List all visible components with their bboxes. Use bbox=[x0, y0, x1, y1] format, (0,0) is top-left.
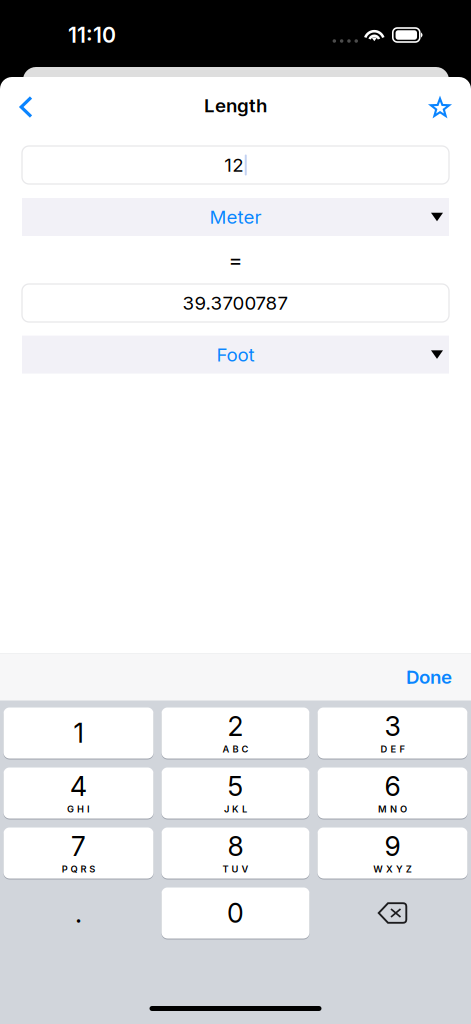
staticText: I bbox=[87, 803, 90, 815]
staticText: 6 bbox=[384, 770, 400, 802]
staticText: 3 bbox=[384, 710, 400, 742]
staticText: L bbox=[242, 803, 247, 815]
button[interactable]: 1 bbox=[3, 707, 153, 758]
staticText: D bbox=[381, 743, 388, 755]
staticText: Z bbox=[406, 863, 412, 875]
button[interactable]: 9 bbox=[317, 827, 467, 878]
staticText: 39.3700787 bbox=[182, 292, 288, 314]
staticText: 7 bbox=[71, 830, 86, 862]
staticText: O bbox=[400, 803, 407, 815]
button[interactable]: 5 bbox=[161, 767, 309, 818]
staticText: E bbox=[390, 743, 396, 755]
staticText: F bbox=[399, 743, 404, 755]
staticText: C bbox=[241, 743, 248, 755]
button[interactable]: . bbox=[3, 887, 153, 938]
staticText: R bbox=[80, 863, 86, 875]
staticText: Done bbox=[406, 666, 452, 688]
staticText: V bbox=[241, 863, 248, 875]
staticText: 1 bbox=[73, 717, 83, 749]
staticText: 8 bbox=[227, 830, 243, 862]
staticText: X bbox=[386, 863, 393, 875]
button[interactable]: Meter bbox=[0, 198, 471, 236]
staticText: T bbox=[223, 863, 229, 875]
staticText: J bbox=[224, 803, 229, 815]
staticText: W bbox=[373, 863, 383, 875]
staticText: Length bbox=[204, 94, 267, 117]
staticText: 5 bbox=[227, 770, 243, 802]
button[interactable]: 3 bbox=[317, 707, 467, 758]
staticText: 2 bbox=[227, 710, 243, 742]
staticText: Meter bbox=[209, 206, 261, 228]
staticText: 12 bbox=[224, 154, 243, 176]
staticText: Q bbox=[70, 863, 77, 875]
button[interactable]: 0 bbox=[161, 887, 309, 938]
staticText: S bbox=[89, 863, 95, 875]
button[interactable]: 4 bbox=[3, 767, 153, 818]
button[interactable]: 6 bbox=[317, 767, 467, 818]
staticText: 9 bbox=[384, 830, 400, 862]
staticText: G bbox=[67, 803, 74, 815]
staticText: U bbox=[231, 863, 238, 875]
staticText: 0 bbox=[227, 897, 244, 929]
button[interactable]: Delete bbox=[317, 887, 467, 938]
staticText: N bbox=[390, 803, 397, 815]
staticText: K bbox=[232, 803, 239, 815]
button[interactable]: Favorite bbox=[415, 85, 459, 129]
staticText: H bbox=[77, 803, 84, 815]
staticText: A bbox=[223, 743, 230, 755]
button[interactable]: Back bbox=[4, 85, 48, 129]
staticText: 11:10 bbox=[68, 22, 116, 48]
button[interactable]: Foot bbox=[0, 336, 471, 374]
staticText: M bbox=[378, 803, 387, 815]
button[interactable]: 2 bbox=[161, 707, 309, 758]
staticText: Foot bbox=[216, 343, 254, 366]
staticText: . bbox=[75, 897, 82, 929]
button[interactable]: 8 bbox=[161, 827, 309, 878]
staticText: 4 bbox=[70, 770, 87, 802]
button[interactable]: 7 bbox=[3, 827, 153, 878]
button[interactable]: Done bbox=[396, 658, 462, 696]
staticText: = bbox=[228, 247, 242, 273]
staticText: B bbox=[232, 743, 238, 755]
staticText: P bbox=[62, 863, 68, 875]
staticText: Y bbox=[396, 863, 403, 875]
